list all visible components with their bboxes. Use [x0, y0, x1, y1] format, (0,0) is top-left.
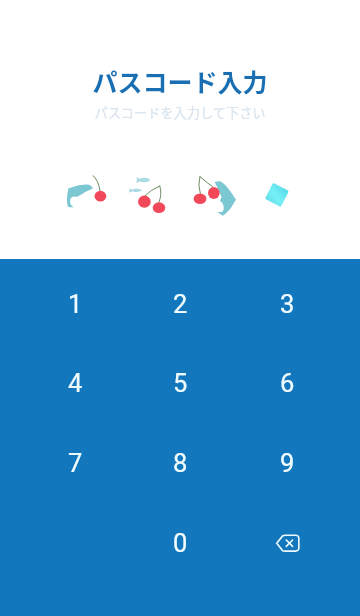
button[interactable]: 5 — [128, 343, 233, 422]
button[interactable]: 2 — [128, 264, 233, 343]
button[interactable]: 3 — [235, 264, 340, 343]
staticText: 6 — [280, 368, 295, 398]
staticText: パスコードを入力して下さい — [94, 103, 266, 122]
staticText: 7 — [68, 448, 83, 478]
staticText: 9 — [280, 448, 295, 478]
staticText: 2 — [173, 289, 188, 319]
button[interactable]: 9 — [235, 423, 340, 502]
staticText: 0 — [173, 528, 188, 558]
button[interactable]: 6 — [235, 343, 340, 422]
button[interactable]: 0 — [128, 503, 233, 582]
button[interactable]: 7 — [23, 423, 128, 502]
staticText: パスコード入力 — [92, 63, 268, 99]
staticText: 8 — [173, 448, 188, 478]
button[interactable]: Delete — [235, 503, 340, 582]
staticText: 3 — [280, 289, 295, 319]
staticText: 4 — [68, 368, 83, 398]
button[interactable]: 4 — [23, 343, 128, 422]
staticText: 5 — [173, 368, 188, 398]
button[interactable]: 1 — [23, 264, 128, 343]
staticText: 1 — [68, 289, 83, 319]
button[interactable]: 8 — [128, 423, 233, 502]
